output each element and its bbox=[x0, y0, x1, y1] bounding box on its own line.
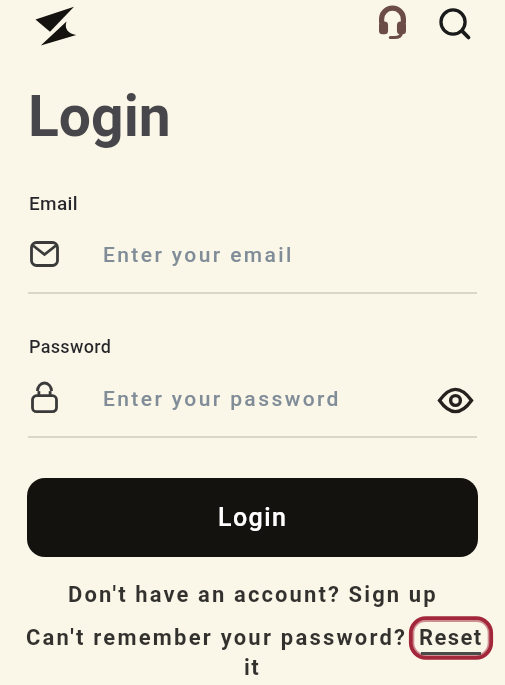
staticText: Enter your password bbox=[103, 387, 341, 412]
staticText: Reset bbox=[419, 625, 483, 651]
button[interactable]: Login bbox=[27, 478, 478, 557]
button[interactable] bbox=[28, 3, 78, 47]
button[interactable] bbox=[436, 385, 475, 416]
staticText: it bbox=[244, 655, 261, 681]
staticText: Email bbox=[29, 192, 78, 214]
button[interactable] bbox=[379, 5, 406, 38]
staticText: Login bbox=[218, 503, 288, 532]
staticText: Password bbox=[29, 336, 112, 357]
button[interactable]: Don't have an account? Sign up bbox=[0, 582, 505, 608]
staticText: Enter your email bbox=[103, 243, 294, 268]
staticText: Can't remember your password? bbox=[26, 625, 415, 651]
button[interactable]: Reset bbox=[409, 616, 493, 660]
button[interactable] bbox=[437, 6, 473, 40]
staticText: Login bbox=[28, 83, 171, 150]
staticText: Don't have an account? Sign up bbox=[68, 582, 438, 608]
